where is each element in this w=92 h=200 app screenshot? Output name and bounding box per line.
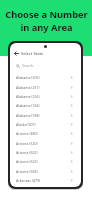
button[interactable]: Alaska (907) (10, 120, 81, 129)
staticText: Arizona (520) (16, 141, 38, 146)
button[interactable]: Arkansas (479) (10, 176, 81, 185)
staticText: in any Area (20, 21, 73, 34)
button[interactable]: Arizona (623) (10, 157, 81, 166)
button[interactable]: Alabama (251) (10, 82, 81, 92)
staticText: Alabama (334) (16, 103, 40, 108)
button[interactable]: Alabama (205) (10, 73, 81, 82)
button[interactable]: Alabama (938) (10, 110, 81, 120)
staticText: Alabama (205) (16, 75, 40, 80)
staticText: Alaska (907) (16, 122, 36, 127)
staticText: Alabama (251) (16, 85, 40, 90)
staticText: Alabama (938) (16, 113, 40, 118)
button[interactable]: Back (13, 50, 20, 57)
button[interactable]: Arizona (928) (10, 166, 81, 176)
staticText: Arizona (602) (16, 150, 38, 155)
staticText: Search (22, 63, 34, 68)
staticText: Arizona (928) (16, 169, 38, 174)
staticText: Arizona (480) (16, 131, 38, 136)
button[interactable]: Arizona (602) (10, 148, 81, 157)
staticText: Arizona (623) (16, 159, 38, 164)
button[interactable]: Arizona (520) (10, 138, 81, 148)
staticText: Arkansas (479) (16, 178, 41, 183)
staticText: Alabama (256) (16, 94, 40, 99)
button[interactable]: Alabama (256) (10, 92, 81, 101)
button[interactable]: Arizona (480) (10, 129, 81, 138)
staticText: Choose a Number (5, 8, 88, 21)
staticText: Select State (21, 51, 44, 56)
button[interactable]: Alabama (334) (10, 101, 81, 110)
